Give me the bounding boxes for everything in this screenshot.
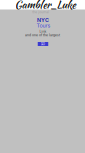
staticText: GO	[40, 42, 45, 46]
staticText: the journal	[32, 10, 49, 14]
staticText: Gambler_Luke	[14, 0, 75, 12]
button[interactable]: GO	[38, 42, 48, 46]
staticText: Tours	[36, 22, 50, 29]
staticText: Link	[39, 29, 46, 33]
staticText: and one of the largest	[25, 33, 60, 37]
staticText: NYC	[37, 17, 49, 23]
